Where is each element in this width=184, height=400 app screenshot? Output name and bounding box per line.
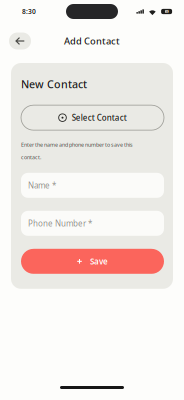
staticText: Enter the name and phone number to save … (21, 141, 133, 161)
staticText: Name * (28, 180, 56, 191)
button[interactable]: Select Contact (21, 105, 164, 130)
staticText: Select Contact (72, 112, 127, 123)
staticText: 89 (165, 9, 169, 14)
staticText: Save (90, 256, 108, 267)
staticText: 8:30 (22, 7, 36, 16)
button[interactable]: Save (21, 249, 164, 274)
staticText: Add Contact (64, 35, 120, 47)
staticText: Phone Number * (28, 218, 92, 229)
staticText: New Contact (21, 77, 87, 91)
button[interactable]: Back (9, 32, 31, 49)
